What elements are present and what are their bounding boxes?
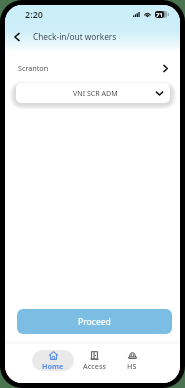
staticText: Access <box>83 361 106 371</box>
button[interactable]: VNI SCR ADM <box>16 83 170 103</box>
staticText: Home <box>42 361 64 371</box>
staticText: Scranton <box>18 63 49 73</box>
staticText: 71 <box>156 11 163 18</box>
staticText: 2:20 <box>25 8 43 20</box>
button[interactable]: HS <box>111 350 153 371</box>
button[interactable]: Access <box>73 350 115 371</box>
staticText: Proceed <box>78 316 111 328</box>
staticText: VNI SCR ADM <box>73 88 118 98</box>
button[interactable]: Proceed <box>17 309 172 334</box>
staticText: HS <box>127 361 137 371</box>
button[interactable]: Scranton <box>5 60 180 76</box>
button[interactable]: Back <box>7 27 26 46</box>
button[interactable]: Home <box>32 350 74 371</box>
staticText: Check-in/out workers <box>33 31 117 42</box>
